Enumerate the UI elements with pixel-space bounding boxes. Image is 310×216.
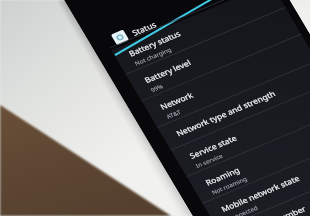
button[interactable]: Mobile network state [200, 125, 310, 216]
staticText: Network [158, 88, 196, 114]
staticText: Mobile network state [219, 168, 302, 216]
staticText: Roaming [203, 163, 242, 190]
staticText: My phone number [234, 199, 309, 216]
staticText: Connected [225, 202, 259, 216]
button[interactable]: My phone number [216, 152, 310, 216]
button[interactable]: Network type and strength [156, 49, 310, 161]
staticText: Not charging [133, 43, 173, 69]
staticText: AT&T [164, 107, 183, 121]
staticText: In service [194, 150, 224, 171]
button[interactable]: Battery status [108, 0, 287, 85]
staticText: Battery level [142, 54, 193, 88]
button[interactable]: Network [140, 23, 310, 138]
other: Settings [109, 28, 131, 47]
staticText: Service state [187, 130, 239, 164]
button[interactable]: Battery level [124, 0, 303, 112]
button[interactable]: Service state [169, 72, 310, 187]
staticText: Network type and strength [174, 82, 278, 145]
staticText: Battery status [126, 25, 183, 62]
button[interactable]: Roaming [185, 98, 310, 214]
staticText: Status [129, 18, 159, 40]
staticText: 99% [148, 81, 165, 94]
button[interactable]: IMEI [232, 178, 310, 216]
staticText: Not roaming [209, 172, 249, 198]
button[interactable]: Settings [95, 0, 271, 60]
